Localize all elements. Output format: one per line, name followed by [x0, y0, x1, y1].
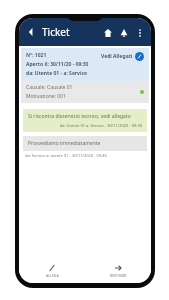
- staticText: Provvediamo immediatamente: [28, 140, 101, 147]
- button[interactable]: Vedi Allegati: [101, 52, 144, 61]
- button[interactable]: Notifications: [117, 26, 130, 39]
- staticText: Motivazione: 001: [26, 93, 66, 100]
- staticText: Ticket: [42, 25, 70, 39]
- staticText: da: Utente 01 a: Service - 30/11/2020 - …: [28, 123, 142, 128]
- button[interactable]: RISPONDI: [85, 259, 151, 283]
- button[interactable]: Si riscontra disservizio tecnico, vedi a…: [23, 109, 147, 132]
- button[interactable]: N°: 1021: [21, 48, 149, 103]
- staticText: da: Utente 01 - a: Service: [26, 70, 88, 77]
- staticText: RISPONDI: [110, 273, 127, 278]
- other: Attachments: [135, 52, 144, 61]
- button[interactable]: Home: [101, 26, 114, 39]
- staticText: Vedi Allegati: [101, 53, 133, 60]
- button[interactable]: Back: [24, 25, 38, 39]
- staticText: N°: 1021: [26, 52, 47, 59]
- staticText: Aperto il: 30/11/20 - 09:30: [26, 61, 89, 68]
- button[interactable]: More options: [133, 26, 146, 39]
- staticText: Si riscontra disservizio tecnico, vedi a…: [28, 113, 131, 120]
- button[interactable]: ALLEGA: [19, 259, 85, 283]
- staticText: da: Service a: utente 01 - 30/11/2020 - …: [25, 153, 107, 158]
- staticText: Causale: Causale 01: [26, 84, 73, 91]
- button[interactable]: Provvediamo immediatamente: [23, 136, 147, 158]
- staticText: ALLEGA: [46, 273, 59, 278]
